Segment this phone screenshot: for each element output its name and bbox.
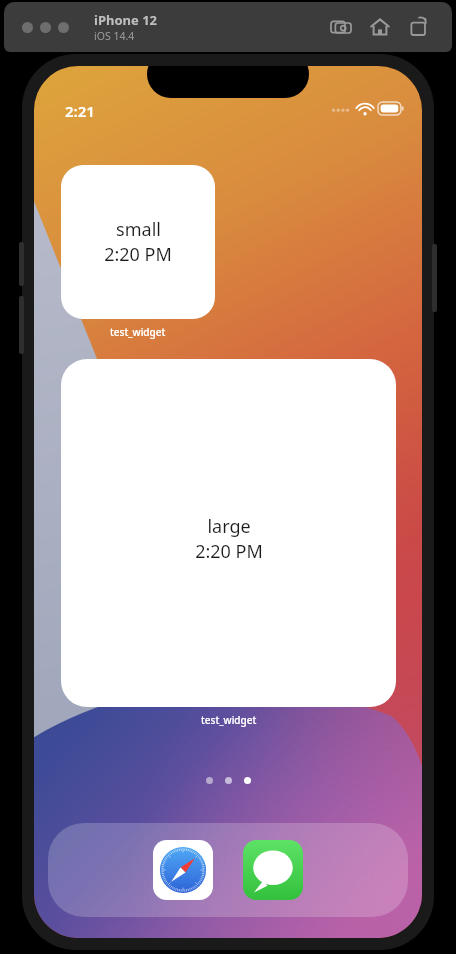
button[interactable]: small	[61, 165, 215, 319]
button[interactable]: Safari	[153, 840, 213, 900]
button[interactable]: large	[61, 359, 396, 707]
staticText: 2:21	[65, 101, 95, 121]
button[interactable]: Messages	[243, 840, 303, 900]
staticText: iOS 14.4	[94, 29, 135, 43]
button[interactable]	[40, 22, 51, 33]
staticText: test_widget	[110, 325, 166, 339]
button[interactable]	[22, 22, 33, 33]
staticText: 2:20 PM	[104, 242, 172, 267]
staticText: large	[207, 514, 251, 539]
button[interactable]: Screenshot	[326, 12, 356, 42]
button[interactable]: Rotate	[404, 12, 434, 42]
staticText: iPhone 12	[94, 11, 157, 29]
staticText: 2:20 PM	[195, 539, 263, 564]
button[interactable]: Home	[365, 12, 395, 42]
staticText: test_widget	[201, 713, 257, 727]
staticText: small	[116, 217, 161, 242]
button[interactable]	[58, 22, 69, 33]
button[interactable]: Volume up	[19, 242, 24, 286]
